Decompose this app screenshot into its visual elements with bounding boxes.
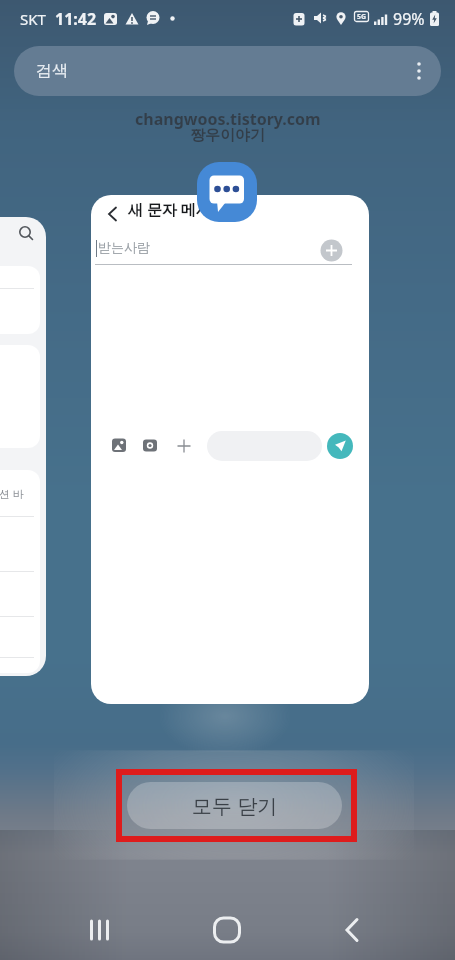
staticText: SKT	[20, 9, 46, 29]
staticText: changwoos.tistory.com	[135, 108, 321, 130]
button[interactable]	[76, 906, 124, 954]
button[interactable]: 새 문자 메시지	[91, 195, 369, 704]
staticText: 검색	[36, 61, 68, 81]
staticText: 짱우이야기	[190, 126, 265, 145]
staticText: 받는사람	[98, 239, 150, 255]
staticText: 5G	[357, 12, 367, 22]
staticText: 11:42	[55, 8, 97, 30]
staticText: 99%	[393, 8, 425, 30]
button[interactable]: 검색	[14, 46, 441, 96]
button[interactable]: 모두 닫기	[127, 782, 342, 829]
staticText: 새 문자 메시지	[128, 199, 226, 219]
staticText: 션 바	[0, 486, 24, 501]
button[interactable]	[397, 46, 441, 96]
staticText: 모두 닫기	[192, 792, 278, 819]
button[interactable]	[328, 906, 376, 954]
button[interactable]	[203, 906, 251, 954]
